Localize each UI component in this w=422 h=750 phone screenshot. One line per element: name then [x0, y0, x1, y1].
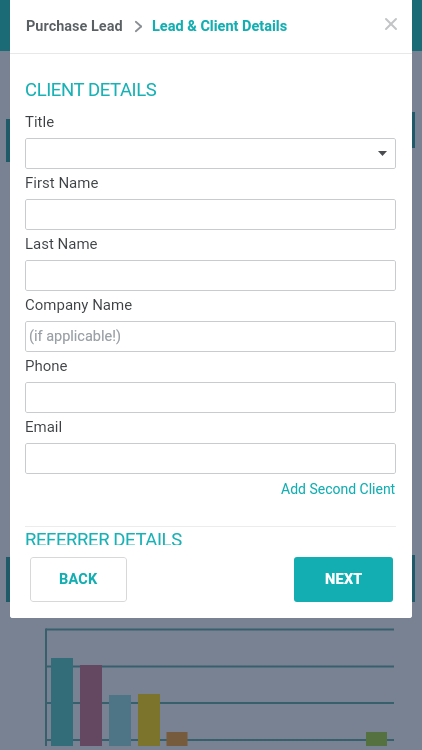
button[interactable]: NEXT	[294, 557, 393, 602]
staticText: Last Name	[25, 235, 98, 253]
staticText: Purchase Lead	[26, 18, 123, 35]
button[interactable]: Add Second Client	[281, 481, 396, 497]
button[interactable]	[379, 12, 403, 36]
button[interactable]	[25, 382, 396, 413]
staticText: (if applicable!)	[29, 328, 121, 345]
staticText: First Name	[25, 174, 99, 192]
button[interactable]: (if applicable!)	[25, 321, 396, 352]
staticText: Phone	[25, 357, 68, 375]
staticText: REFERRER DETAILS	[25, 529, 182, 551]
button[interactable]	[25, 260, 396, 291]
staticText: Company Name	[25, 296, 133, 314]
button[interactable]: BACK	[30, 557, 127, 602]
staticText: Title	[25, 113, 55, 131]
button[interactable]: Lead & Client Details	[152, 18, 288, 35]
button[interactable]	[25, 443, 396, 474]
staticText: NEXT	[325, 571, 363, 588]
button[interactable]	[25, 138, 396, 169]
staticText: BACK	[59, 571, 98, 588]
button[interactable]	[25, 199, 396, 230]
staticText: Email	[25, 418, 63, 436]
staticText: CLIENT DETAILS	[25, 79, 157, 101]
